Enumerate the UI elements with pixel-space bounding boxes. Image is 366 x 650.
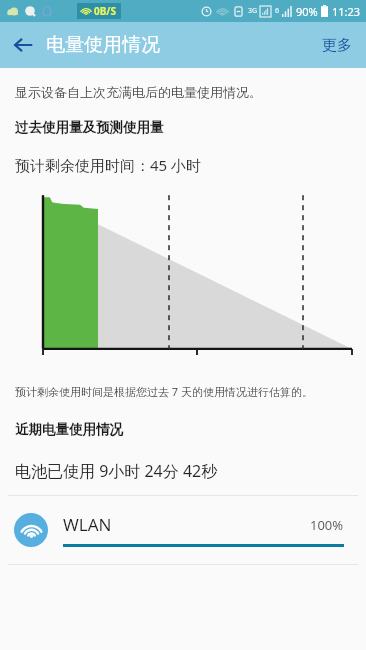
staticText: 0B/S bbox=[94, 4, 117, 18]
staticText: 预计剩余使用时间是根据您过去 7 天的使用情况进行估算的。 bbox=[15, 384, 314, 399]
staticText: 100% bbox=[310, 516, 344, 534]
button[interactable]: 返回 bbox=[0, 22, 46, 68]
staticText: 更多 bbox=[322, 36, 352, 55]
staticText: 电量使用情况 bbox=[46, 33, 160, 57]
staticText: 3G bbox=[248, 6, 258, 16]
staticText: 预计剩余使用时间：45 小时 bbox=[15, 155, 202, 175]
staticText: 过去使用量及预测使用量 bbox=[15, 119, 164, 136]
staticText: 电池已使用 9小时 24分 42秒 bbox=[15, 460, 218, 482]
staticText: 6 bbox=[275, 6, 280, 16]
staticText: 90% bbox=[296, 4, 318, 19]
staticText: 11:23 bbox=[332, 4, 361, 19]
staticText: 近期电量使用情况 bbox=[15, 421, 123, 438]
button[interactable]: WLAN bbox=[0, 496, 366, 564]
staticText: WLAN bbox=[63, 513, 112, 536]
staticText: 显示设备自上次充满电后的电量使用情况。 bbox=[15, 84, 262, 100]
button[interactable]: 更多 bbox=[322, 36, 352, 55]
